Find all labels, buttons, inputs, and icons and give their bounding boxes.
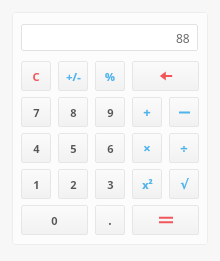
staticText: % <box>105 69 115 84</box>
button[interactable]: + <box>132 97 162 127</box>
staticText: 2 <box>70 177 77 192</box>
button[interactable]: x² <box>132 169 162 199</box>
staticText: 4 <box>33 141 40 156</box>
staticText: C <box>32 69 40 84</box>
button[interactable]: 8 <box>58 97 88 127</box>
staticText: 8 <box>70 105 77 120</box>
staticText: 1 <box>33 177 40 192</box>
staticText: 6 <box>107 141 114 156</box>
staticText: 88 <box>176 30 190 46</box>
button[interactable]: 4 <box>21 133 51 163</box>
staticText: 3 <box>107 177 114 192</box>
staticText: √ <box>180 177 189 192</box>
staticText: 9 <box>107 105 114 120</box>
button[interactable]: Minus <box>169 97 199 127</box>
staticText: + <box>143 103 151 121</box>
staticText: +/- <box>66 69 81 84</box>
button[interactable]: 9 <box>95 97 125 127</box>
button[interactable]: 88 <box>21 24 198 51</box>
staticText: × <box>143 139 151 157</box>
button[interactable]: × <box>132 133 162 163</box>
staticText: 5 <box>70 141 77 156</box>
staticText: 0 <box>51 213 58 228</box>
staticText: ÷ <box>180 139 188 157</box>
button[interactable]: C <box>21 61 51 91</box>
button[interactable]: Backspace <box>132 61 199 91</box>
button[interactable]: % <box>95 61 125 91</box>
button[interactable]: 0 <box>21 205 88 235</box>
button[interactable]: . <box>95 205 125 235</box>
button[interactable]: 7 <box>21 97 51 127</box>
button[interactable]: 3 <box>95 169 125 199</box>
button[interactable]: 1 <box>21 169 51 199</box>
button[interactable]: √ <box>169 169 199 199</box>
button[interactable]: 6 <box>95 133 125 163</box>
button[interactable]: ÷ <box>169 133 199 163</box>
button[interactable]: +/- <box>58 61 88 91</box>
button[interactable]: 5 <box>58 133 88 163</box>
button[interactable]: 2 <box>58 169 88 199</box>
button[interactable]: Equals <box>132 205 199 235</box>
staticText: 7 <box>33 105 40 120</box>
staticText: x² <box>142 177 153 192</box>
staticText: . <box>108 212 112 228</box>
